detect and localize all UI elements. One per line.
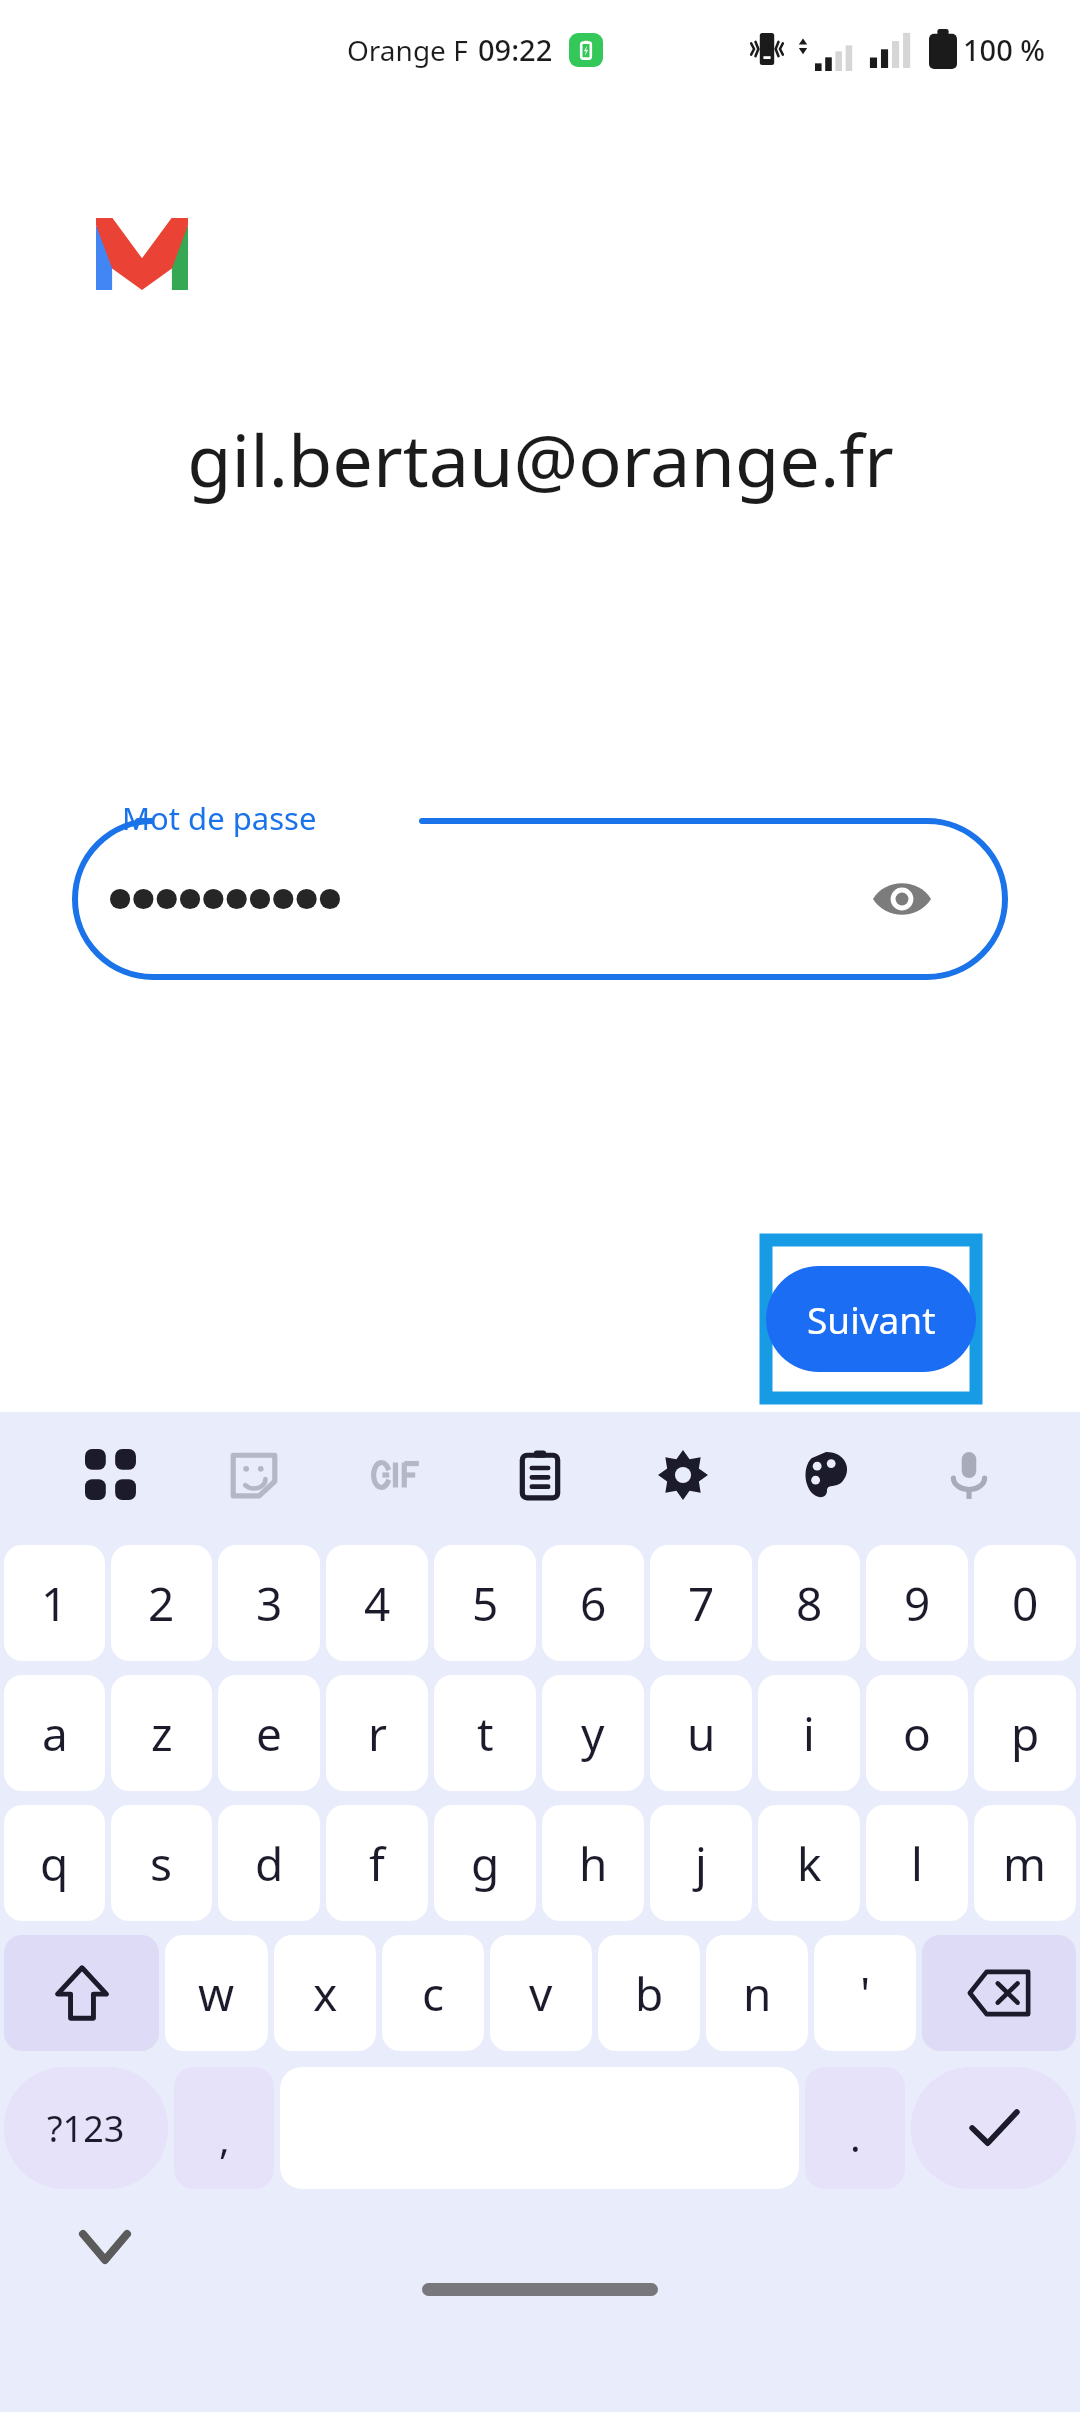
button[interactable]: x	[274, 1935, 376, 2051]
button[interactable]: Maj	[4, 1935, 159, 2051]
staticText: y	[581, 1702, 605, 1765]
staticText: q	[40, 1832, 69, 1895]
staticText: d	[255, 1832, 284, 1895]
button[interactable]: Valider	[911, 2067, 1076, 2189]
staticText: w	[198, 1962, 235, 2025]
staticText: z	[151, 1702, 173, 1765]
button[interactable]: j	[650, 1805, 752, 1921]
staticText: u	[687, 1702, 716, 1765]
staticText: 09:22	[478, 30, 553, 69]
staticText: 3	[256, 1572, 283, 1635]
button[interactable]: y	[542, 1675, 644, 1791]
button[interactable]: '	[814, 1935, 916, 2051]
button[interactable]: w	[165, 1935, 268, 2051]
button[interactable]: 9	[866, 1545, 968, 1661]
button[interactable]: Supprimer	[922, 1935, 1076, 2051]
staticText: o	[903, 1702, 931, 1765]
button[interactable]: e	[218, 1675, 320, 1791]
button[interactable]: 1	[4, 1545, 105, 1661]
button[interactable]: Mot de passe	[72, 818, 1008, 980]
staticText: 4	[364, 1572, 391, 1635]
button[interactable]: Widgets	[65, 1429, 157, 1521]
button[interactable]: f	[326, 1805, 428, 1921]
staticText: Suivant	[807, 1294, 936, 1344]
button[interactable]: 4	[326, 1545, 428, 1661]
button[interactable]: 5	[434, 1545, 536, 1661]
button[interactable]: q	[4, 1805, 105, 1921]
button[interactable]: 6	[542, 1545, 644, 1661]
button[interactable]: GIF	[351, 1429, 443, 1521]
staticText: 2	[148, 1572, 175, 1635]
staticText: p	[1011, 1702, 1040, 1765]
staticText: ,	[219, 2111, 230, 2165]
button[interactable]: Masquer le clavier	[70, 2212, 140, 2282]
button[interactable]: a	[4, 1675, 105, 1791]
staticText: l	[911, 1832, 923, 1895]
staticText: j	[695, 1832, 707, 1895]
button[interactable]: Autocollants	[208, 1429, 300, 1521]
button[interactable]: s	[111, 1805, 212, 1921]
staticText: ?123	[47, 2104, 125, 2153]
staticText: g	[471, 1832, 500, 1895]
staticText: '	[860, 1962, 871, 2025]
button[interactable]: c	[382, 1935, 484, 2051]
staticText: 1	[41, 1572, 68, 1635]
staticText: f	[369, 1832, 385, 1895]
button[interactable]: d	[218, 1805, 320, 1921]
staticText: 6	[580, 1572, 607, 1635]
button[interactable]: Presse-papiers	[494, 1429, 586, 1521]
button[interactable]: Suivant	[766, 1266, 976, 1372]
staticText: b	[635, 1962, 664, 2025]
staticText: 5	[472, 1572, 499, 1635]
staticText: v	[529, 1962, 553, 2025]
button[interactable]: v	[490, 1935, 592, 2051]
button[interactable]: 2	[111, 1545, 212, 1661]
button[interactable]: n	[706, 1935, 808, 2051]
button[interactable]: ?123	[4, 2067, 168, 2189]
staticText: 100 %	[963, 30, 1046, 69]
button[interactable]: Thème	[780, 1429, 872, 1521]
staticText: 8	[796, 1572, 823, 1635]
button[interactable]: r	[326, 1675, 428, 1791]
button[interactable]: t	[434, 1675, 536, 1791]
staticText: 7	[688, 1572, 715, 1635]
staticText: .	[850, 2109, 861, 2163]
button[interactable]: Paramètres	[637, 1429, 729, 1521]
button[interactable]: l	[866, 1805, 968, 1921]
button[interactable]: 7	[650, 1545, 752, 1661]
staticText: 0	[1012, 1572, 1039, 1635]
button[interactable]: 3	[218, 1545, 320, 1661]
staticText: a	[42, 1702, 68, 1765]
button[interactable]: 8	[758, 1545, 860, 1661]
button[interactable]: h	[542, 1805, 644, 1921]
button[interactable]: Afficher le mot de passe	[862, 859, 942, 939]
button[interactable]: p	[974, 1675, 1076, 1791]
button[interactable]: z	[111, 1675, 212, 1791]
staticText: r	[368, 1702, 387, 1765]
button[interactable]: ,	[174, 2067, 274, 2189]
staticText: n	[743, 1962, 772, 2025]
button[interactable]: b	[598, 1935, 700, 2051]
staticText: e	[256, 1702, 282, 1765]
button[interactable]: m	[974, 1805, 1076, 1921]
staticText: x	[313, 1962, 338, 2025]
staticText: s	[150, 1832, 173, 1895]
button[interactable]: o	[866, 1675, 968, 1791]
staticText: gil.bertau@orange.fr	[187, 410, 894, 508]
button[interactable]: u	[650, 1675, 752, 1791]
staticText: m	[1003, 1832, 1047, 1895]
button[interactable]: g	[434, 1805, 536, 1921]
staticText: i	[803, 1702, 815, 1765]
button[interactable]: Micro	[923, 1429, 1015, 1521]
staticText: Mot de passe	[122, 797, 317, 839]
button[interactable]: 0	[974, 1545, 1076, 1661]
staticText: k	[797, 1832, 822, 1895]
button[interactable]: k	[758, 1805, 860, 1921]
button[interactable]: i	[758, 1675, 860, 1791]
staticText: h	[579, 1832, 608, 1895]
button[interactable]: .	[805, 2067, 905, 2189]
staticText: t	[477, 1702, 494, 1765]
staticText: c	[422, 1962, 445, 2025]
staticText: 9	[904, 1572, 931, 1635]
